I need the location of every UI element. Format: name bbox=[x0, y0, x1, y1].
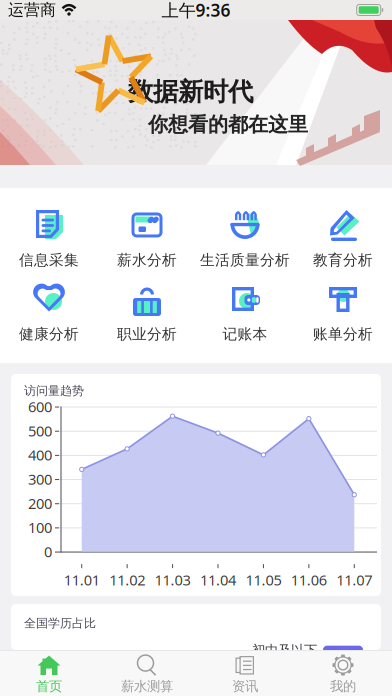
button[interactable]: 账单分析 bbox=[294, 277, 392, 347]
button[interactable]: 生活质量分析 bbox=[196, 203, 294, 273]
staticText: 上午9:36 bbox=[161, 0, 230, 21]
staticText: 500 bbox=[28, 421, 52, 440]
button[interactable]: 我的 bbox=[294, 649, 392, 696]
button[interactable]: 薪水测算 bbox=[98, 649, 196, 696]
staticText: 11.01 bbox=[64, 570, 100, 590]
staticText: 11.06 bbox=[291, 570, 327, 590]
staticText: 账单分析 bbox=[313, 325, 373, 343]
staticText: 11.02 bbox=[109, 570, 145, 590]
staticText: 600 bbox=[28, 397, 52, 416]
staticText: 职业分析 bbox=[117, 325, 177, 343]
button[interactable]: 职业分析 bbox=[98, 277, 196, 347]
button[interactable]: 资讯 bbox=[196, 649, 294, 696]
staticText: 记账本 bbox=[222, 325, 267, 343]
staticText: 生活质量分析 bbox=[200, 251, 290, 269]
staticText: 11.05 bbox=[245, 570, 281, 590]
staticText: 健康分析 bbox=[19, 325, 79, 343]
staticText: 400 bbox=[28, 445, 52, 465]
staticText: 11.04 bbox=[200, 570, 236, 590]
button[interactable]: 教育分析 bbox=[294, 203, 392, 273]
staticText: 初中及以下 bbox=[252, 642, 317, 658]
staticText: 你想看的都在这里 bbox=[148, 112, 308, 137]
staticText: 100 bbox=[28, 518, 52, 537]
staticText: 200 bbox=[28, 493, 52, 513]
staticText: 数据新时代 bbox=[128, 76, 253, 107]
staticText: 首页 bbox=[36, 678, 62, 694]
staticText: 访问量趋势 bbox=[24, 383, 84, 398]
staticText: 资讯 bbox=[232, 678, 258, 694]
button[interactable]: 薪水分析 bbox=[98, 203, 196, 273]
staticText: 信息采集 bbox=[19, 251, 79, 269]
staticText: 运营商 bbox=[8, 0, 56, 20]
staticText: 300 bbox=[28, 469, 52, 489]
staticText: 全国学历占比 bbox=[24, 616, 96, 631]
staticText: 教育分析 bbox=[313, 251, 373, 269]
staticText: 11.03 bbox=[155, 570, 191, 590]
staticText: 薪水测算 bbox=[121, 678, 173, 694]
button[interactable]: 记账本 bbox=[196, 277, 294, 347]
staticText: 0 bbox=[44, 542, 52, 561]
button[interactable]: 健康分析 bbox=[0, 277, 98, 347]
staticText: 11.07 bbox=[336, 570, 372, 590]
staticText: 薪水分析 bbox=[117, 251, 177, 269]
button[interactable]: 首页 bbox=[0, 649, 98, 696]
button[interactable]: 信息采集 bbox=[0, 203, 98, 273]
staticText: 我的 bbox=[330, 678, 356, 694]
